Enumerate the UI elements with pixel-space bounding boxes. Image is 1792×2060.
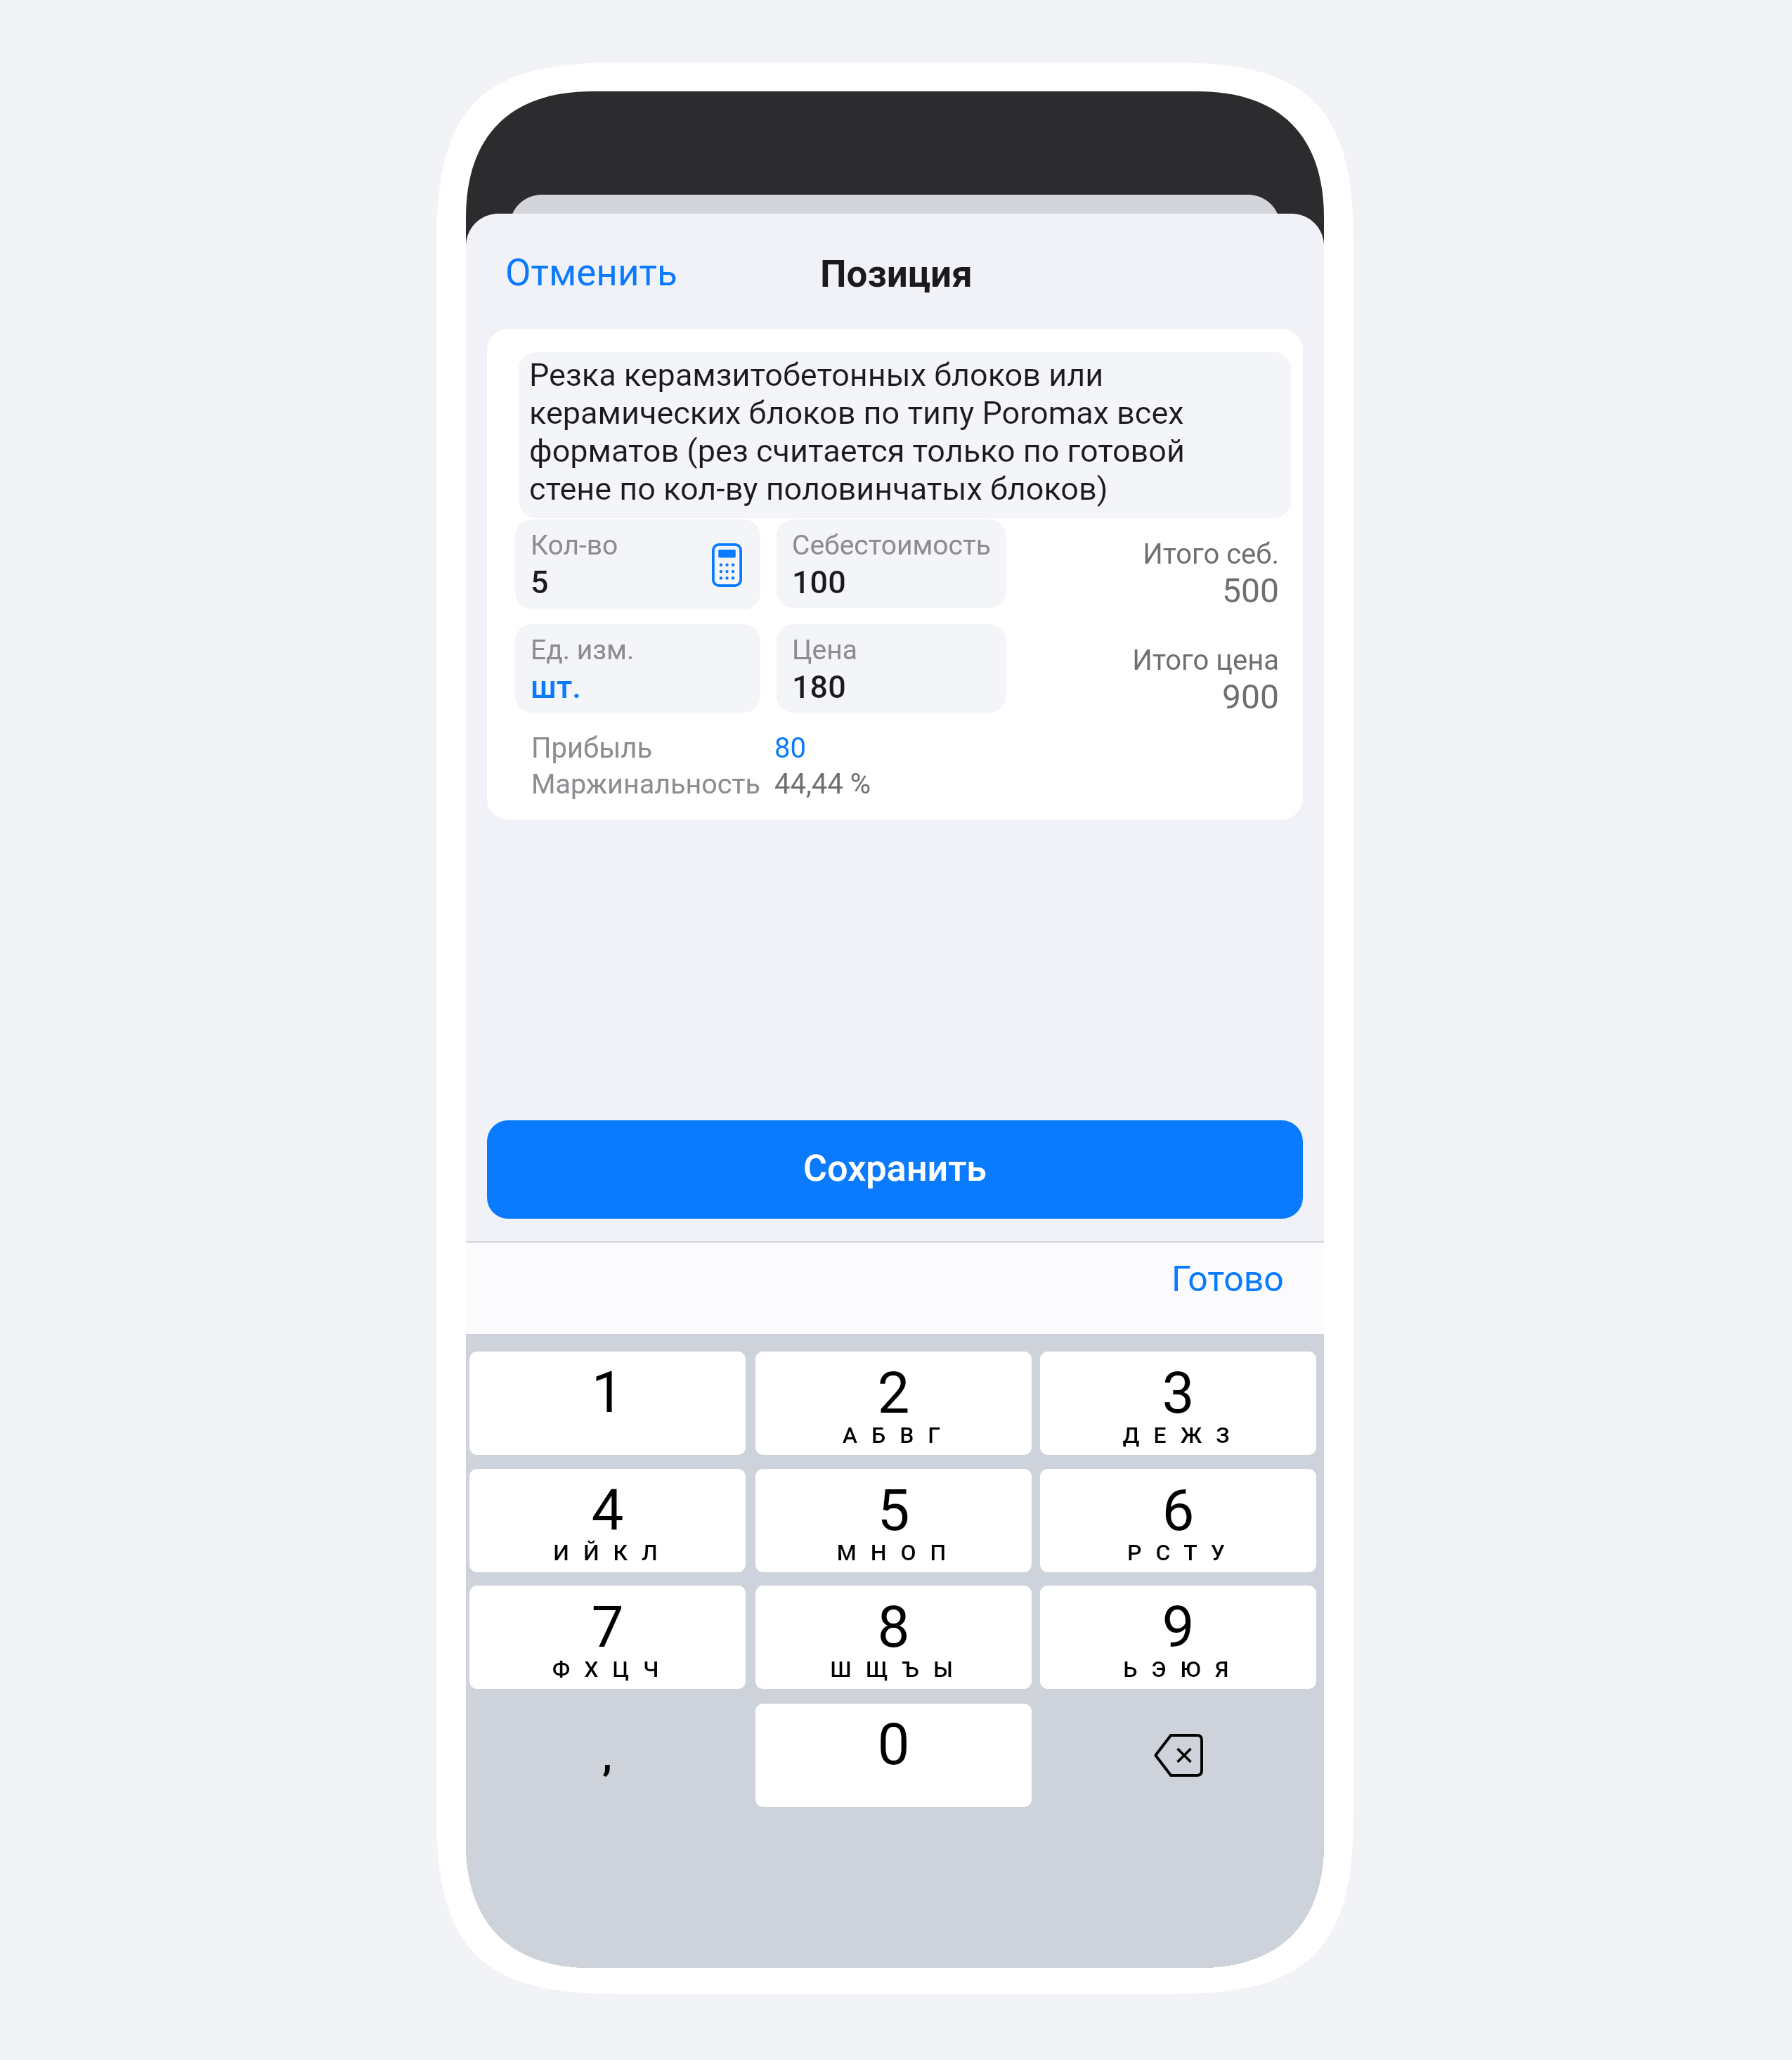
button[interactable]: 0 [755,1704,1032,1807]
staticText: А Б В Г [755,1422,1032,1449]
staticText: 6 [1040,1477,1316,1544]
button[interactable]: Сохранить [487,1120,1303,1219]
staticText: 500 [928,571,1279,610]
staticText: 4 [469,1477,746,1544]
staticText: 180 [792,668,846,706]
button[interactable]: 7 [469,1586,746,1689]
staticText: Себестоимость [792,529,991,562]
staticText: Позиция [820,252,973,296]
staticText: 5 [531,564,549,601]
staticText: 8 [755,1593,1032,1661]
button[interactable]: 1 [469,1352,746,1455]
staticText: Готово [1171,1259,1284,1300]
staticText: Ед. изм. [531,634,635,666]
staticText: Кол-во [531,529,618,562]
staticText: 100 [792,564,846,601]
staticText: Д Е Ж З [1040,1422,1316,1449]
staticText: 900 [928,677,1279,716]
staticText: 3 [1040,1359,1316,1427]
button[interactable]: , [469,1704,746,1807]
button[interactable]: Готово [1148,1243,1308,1316]
button[interactable]: Backspace [1040,1704,1316,1807]
button[interactable]: 2 [755,1352,1032,1455]
staticText: М Н О П [755,1539,1032,1566]
staticText: Отменить [505,251,677,294]
staticText: 1 [469,1359,746,1426]
button[interactable]: Цена [777,624,1006,713]
staticText: 80 [774,732,806,765]
button[interactable]: 5 [755,1469,1032,1572]
staticText: Ф Х Ц Ч [469,1656,746,1683]
button[interactable]: 6 [1040,1469,1316,1572]
staticText: Маржинальность [531,767,760,800]
staticText: 44,44 % [774,767,871,801]
staticText: Резка керамзитобетонных блоков или керам… [529,356,1225,507]
button[interactable]: Резка керамзитобетонных блоков или керам… [519,352,1291,518]
staticText: Итого себ. [928,538,1279,571]
staticText: Ш Щ Ъ Ы [755,1656,1032,1683]
staticText: И Й К Л [469,1539,746,1566]
staticText: Прибыль [531,732,653,765]
button[interactable]: 9 [1040,1586,1316,1689]
button[interactable]: Ед. изм. [515,624,760,713]
staticText: , [602,1732,613,1780]
staticText: 0 [755,1711,1032,1778]
staticText: 9 [1040,1593,1316,1661]
staticText: шт. [531,668,581,706]
staticText: 2 [755,1359,1032,1427]
button[interactable]: Отменить [488,238,694,307]
button[interactable]: Calculator [712,543,742,587]
button[interactable]: Себестоимость [777,519,1006,608]
staticText: Сохранить [487,1147,1303,1190]
button[interactable]: 3 [1040,1352,1316,1455]
button[interactable]: 8 [755,1586,1032,1689]
staticText: Ь Э Ю Я [1040,1656,1316,1683]
button[interactable]: Кол-во [515,519,760,609]
staticText: Итого цена [928,644,1279,677]
button[interactable]: 4 [469,1469,746,1572]
staticText: 7 [469,1593,746,1661]
staticText: Цена [792,634,857,666]
staticText: Р С Т У [1040,1539,1316,1566]
staticText: 5 [755,1477,1032,1544]
